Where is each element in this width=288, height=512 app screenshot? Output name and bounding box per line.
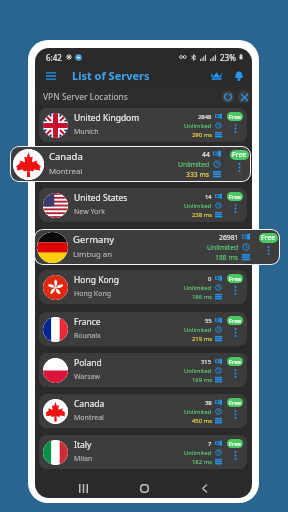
- staticText: Free: [229, 113, 242, 121]
- staticText: List of Servers: [72, 68, 150, 83]
- staticText: Hong Kong: [74, 274, 120, 286]
- staticText: Montreal: [49, 166, 83, 177]
- button[interactable]: Free: [227, 357, 243, 366]
- button[interactable]: More options: [230, 123, 241, 134]
- button[interactable]: Poland: [39, 353, 247, 387]
- staticText: 188 ms: [215, 253, 239, 262]
- staticText: Free: [229, 358, 242, 366]
- staticText: Free: [229, 193, 242, 201]
- staticText: Unlimited: [184, 408, 212, 416]
- button[interactable]: United States: [39, 188, 247, 222]
- button[interactable]: Close: [238, 91, 250, 103]
- staticText: 290 ms: [192, 131, 212, 139]
- staticText: VPN Server Locations: [43, 91, 128, 103]
- staticText: 14: [205, 193, 212, 201]
- staticText: Unlimited: [184, 326, 212, 334]
- button[interactable]: Home: [131, 478, 157, 498]
- staticText: Rounaix: [74, 331, 101, 341]
- staticText: 2848: [198, 113, 212, 121]
- staticText: 219 ms: [192, 335, 212, 343]
- button[interactable]: Refresh: [222, 91, 234, 103]
- button[interactable]: Free: [230, 150, 249, 160]
- staticText: 26981: [219, 233, 239, 242]
- button[interactable]: Premium: [208, 67, 225, 84]
- staticText: 55: [205, 317, 212, 325]
- staticText: 169 ms: [192, 376, 212, 384]
- button[interactable]: Free: [259, 233, 278, 243]
- staticText: Free: [229, 440, 242, 448]
- staticText: United Kingdom: [74, 112, 140, 124]
- button[interactable]: Free: [227, 112, 243, 121]
- staticText: Unlimited: [184, 367, 212, 375]
- staticText: Unlimited: [184, 122, 212, 130]
- staticText: 0: [208, 275, 212, 283]
- button[interactable]: Italy: [39, 435, 247, 469]
- staticText: Canada: [49, 150, 83, 163]
- staticText: 6:42: [46, 52, 62, 63]
- button[interactable]: Hong Kong: [39, 270, 247, 304]
- staticText: United States: [74, 192, 128, 204]
- staticText: Warsaw: [74, 372, 100, 382]
- staticText: 315: [201, 358, 212, 366]
- staticText: France: [74, 316, 101, 328]
- staticText: 186 ms: [192, 293, 212, 301]
- button[interactable]: France: [39, 312, 247, 346]
- button[interactable]: More options: [230, 450, 241, 461]
- button[interactable]: Notifications: [230, 67, 247, 84]
- button[interactable]: Free: [227, 316, 243, 325]
- button[interactable]: Free: [227, 192, 243, 201]
- staticText: 182 ms: [192, 458, 212, 466]
- button[interactable]: United Kingdom: [39, 108, 247, 142]
- staticText: Limbug an: [73, 249, 113, 260]
- button[interactable]: More options: [230, 368, 241, 379]
- button[interactable]: More options: [230, 203, 241, 214]
- staticText: Unlimited: [184, 449, 212, 457]
- button[interactable]: Canada: [39, 394, 247, 428]
- staticText: Unlimited: [184, 284, 212, 292]
- staticText: New York: [74, 207, 105, 217]
- staticText: 333 ms: [186, 170, 210, 179]
- button[interactable]: Free: [227, 439, 243, 448]
- staticText: Unlimited: [207, 243, 239, 252]
- button[interactable]: Free: [227, 398, 243, 407]
- staticText: Poland: [74, 357, 102, 369]
- staticText: Hong Kong: [74, 289, 112, 299]
- staticText: Free: [229, 399, 242, 407]
- staticText: Milan: [74, 454, 93, 464]
- button[interactable]: Free: [227, 274, 243, 283]
- button[interactable]: Menu: [42, 62, 60, 89]
- staticText: Montreal: [74, 413, 104, 423]
- button[interactable]: More options: [234, 162, 245, 173]
- staticText: Italy: [74, 439, 92, 451]
- staticText: Germany: [73, 233, 115, 246]
- staticText: Free: [232, 150, 247, 160]
- button[interactable]: More options: [230, 285, 241, 296]
- staticText: Free: [229, 275, 242, 283]
- button[interactable]: Germany: [35, 230, 279, 264]
- staticText: 238 ms: [192, 211, 212, 219]
- button[interactable]: Recents: [70, 478, 96, 498]
- staticText: Unlimited: [184, 202, 212, 210]
- staticText: 23%: [220, 52, 236, 63]
- staticText: Free: [229, 317, 242, 325]
- button[interactable]: More options: [230, 409, 241, 420]
- button[interactable]: Back: [191, 478, 217, 498]
- button[interactable]: Canada: [11, 147, 250, 181]
- staticText: Free: [261, 233, 276, 243]
- staticText: 7: [208, 440, 212, 448]
- staticText: 44: [202, 150, 210, 159]
- button[interactable]: More options: [230, 327, 241, 338]
- button[interactable]: More options: [263, 245, 274, 256]
- staticText: Unlimited: [178, 160, 210, 169]
- staticText: 450 ms: [192, 417, 212, 425]
- staticText: Munich: [74, 127, 99, 137]
- staticText: Canada: [74, 398, 105, 410]
- staticText: 38: [205, 399, 212, 407]
